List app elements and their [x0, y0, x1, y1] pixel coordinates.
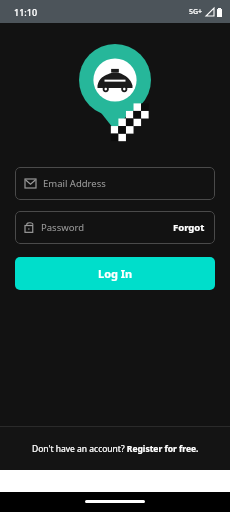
staticText: Password — [41, 221, 84, 234]
staticText: Log In — [98, 266, 133, 281]
staticText: 11:10 — [14, 6, 38, 18]
button[interactable]: Log In — [15, 257, 215, 290]
button[interactable]: Password — [15, 211, 215, 244]
staticText: Forgot — [173, 221, 205, 234]
staticText: 5G+ — [189, 7, 203, 17]
staticText: Email Address — [43, 177, 106, 190]
staticText: Don't have an account? Register for free… — [32, 443, 199, 455]
button[interactable]: Email Address — [15, 167, 215, 200]
button[interactable]: Don't have an account? Register for free… — [0, 427, 230, 470]
button[interactable]: Forgot — [173, 221, 205, 234]
other: Home — [85, 500, 145, 503]
